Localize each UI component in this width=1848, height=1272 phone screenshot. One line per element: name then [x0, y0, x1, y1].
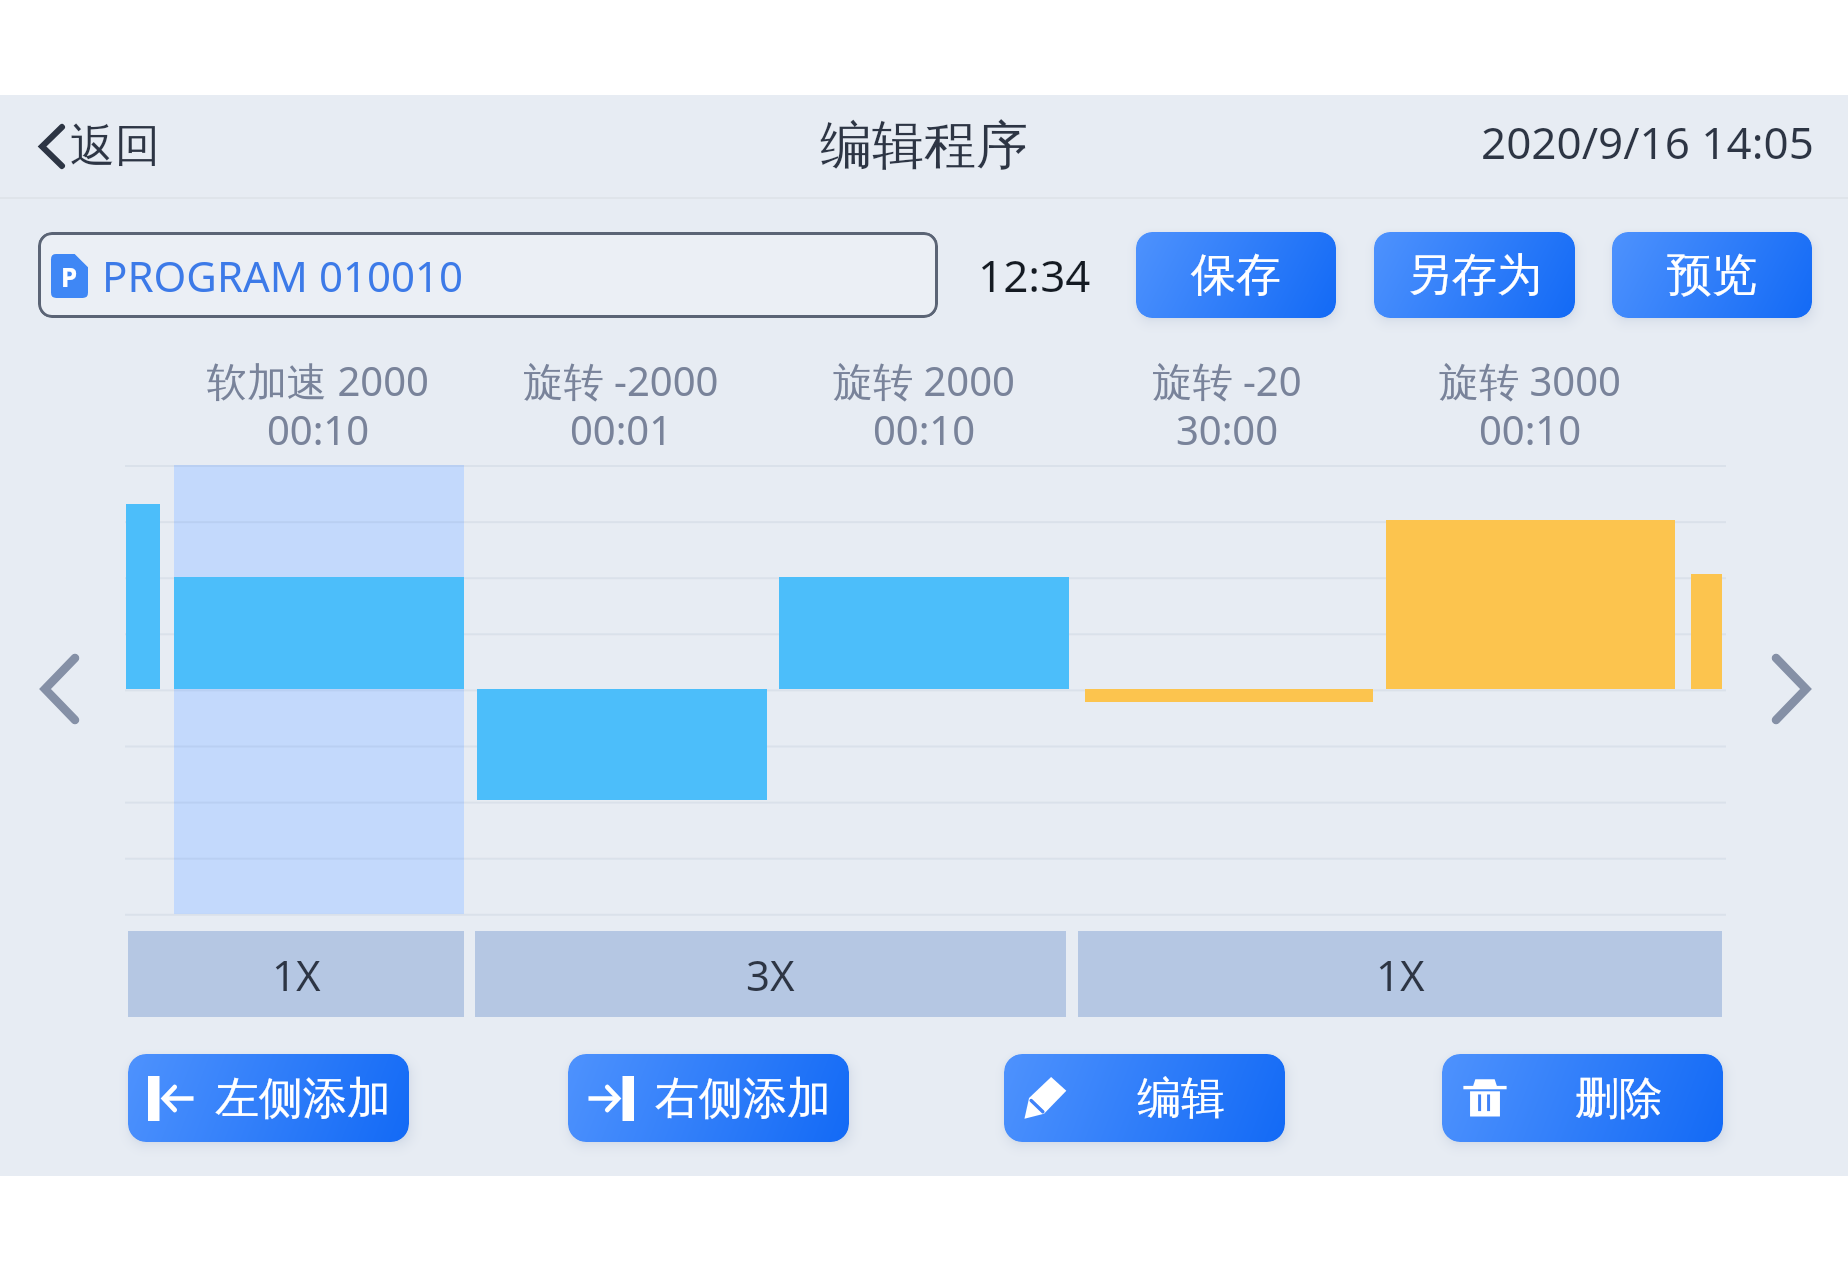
staticText: 返回 [70, 118, 160, 175]
button[interactable]: 3X [475, 931, 1066, 1017]
button[interactable]: 保存 [1136, 232, 1336, 318]
staticText: 旋转 3000 [1370, 353, 1690, 408]
staticText: 预览 [1667, 247, 1757, 304]
staticText: 3X [746, 946, 795, 1003]
staticText: 00:10 [1370, 402, 1690, 456]
staticText: 另存为 [1407, 247, 1542, 304]
button[interactable]: 预览 [1612, 232, 1812, 318]
staticText: 1X [1376, 946, 1425, 1003]
button[interactable]: Next segment [1744, 634, 1838, 744]
staticText: 旋转 -20 [1067, 353, 1387, 408]
staticText: 30:00 [1067, 402, 1387, 456]
staticText: 1X [272, 946, 321, 1003]
button[interactable]: Previous segment [13, 634, 107, 744]
staticText: 旋转 2000 [764, 353, 1084, 408]
staticText: 左侧添加 [215, 1071, 391, 1126]
button[interactable]: 右侧添加 [568, 1054, 849, 1142]
staticText: 删除 [1575, 1071, 1663, 1126]
staticText: 00:01 [461, 402, 781, 456]
button[interactable]: 1X [128, 931, 464, 1017]
staticText: 编辑 [1137, 1071, 1225, 1126]
staticText: 00:10 [158, 402, 478, 456]
button[interactable]: 另存为 [1374, 232, 1575, 318]
staticText: 2020/9/16 14:05 [1481, 112, 1814, 172]
button[interactable]: 返回 [29, 108, 170, 185]
button[interactable]: P [38, 232, 938, 318]
button[interactable]: 1X [1078, 931, 1722, 1017]
button[interactable]: 左侧添加 [128, 1054, 409, 1142]
staticText: PROGRAM 010010 [102, 247, 464, 304]
staticText: P [61, 259, 78, 294]
button[interactable]: 编辑 [1004, 1054, 1285, 1142]
button[interactable]: 删除 [1442, 1054, 1723, 1142]
staticText: 旋转 -2000 [461, 353, 781, 408]
staticText: 编辑程序 [820, 113, 1028, 179]
staticText: 右侧添加 [655, 1071, 831, 1126]
staticText: 保存 [1191, 247, 1281, 304]
staticText: 软加速 2000 [158, 353, 478, 408]
staticText: 00:10 [764, 402, 1084, 456]
staticText: 12:34 [978, 245, 1091, 305]
